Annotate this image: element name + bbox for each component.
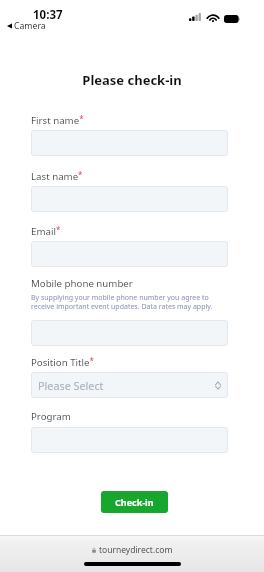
button[interactable]: Please Select bbox=[31, 372, 228, 398]
staticText: Please Select bbox=[38, 378, 104, 393]
staticText: tourneydirect.com bbox=[99, 544, 173, 556]
button[interactable]: Address bar: tourneydirect.com bbox=[92, 544, 173, 556]
staticText: By supplying your mobile phone number yo… bbox=[31, 293, 222, 311]
button[interactable] bbox=[31, 130, 228, 156]
button[interactable] bbox=[31, 320, 228, 346]
staticText: Mobile phone number bbox=[31, 277, 133, 290]
staticText: 10:37 bbox=[33, 7, 63, 23]
staticText: Position Title* bbox=[31, 355, 94, 369]
button[interactable] bbox=[31, 186, 228, 212]
button[interactable] bbox=[31, 241, 228, 267]
staticText: Please check-in bbox=[0, 71, 264, 89]
button[interactable]: Check-in bbox=[101, 491, 168, 513]
button[interactable]: Camera bbox=[7, 20, 46, 32]
staticText: Last name* bbox=[31, 169, 83, 183]
staticText: Program bbox=[31, 410, 71, 423]
staticText: Check-in bbox=[115, 496, 154, 508]
staticText: Email* bbox=[31, 224, 61, 238]
staticText: First name* bbox=[31, 113, 84, 127]
staticText: Camera bbox=[14, 20, 46, 32]
button[interactable] bbox=[31, 427, 228, 453]
